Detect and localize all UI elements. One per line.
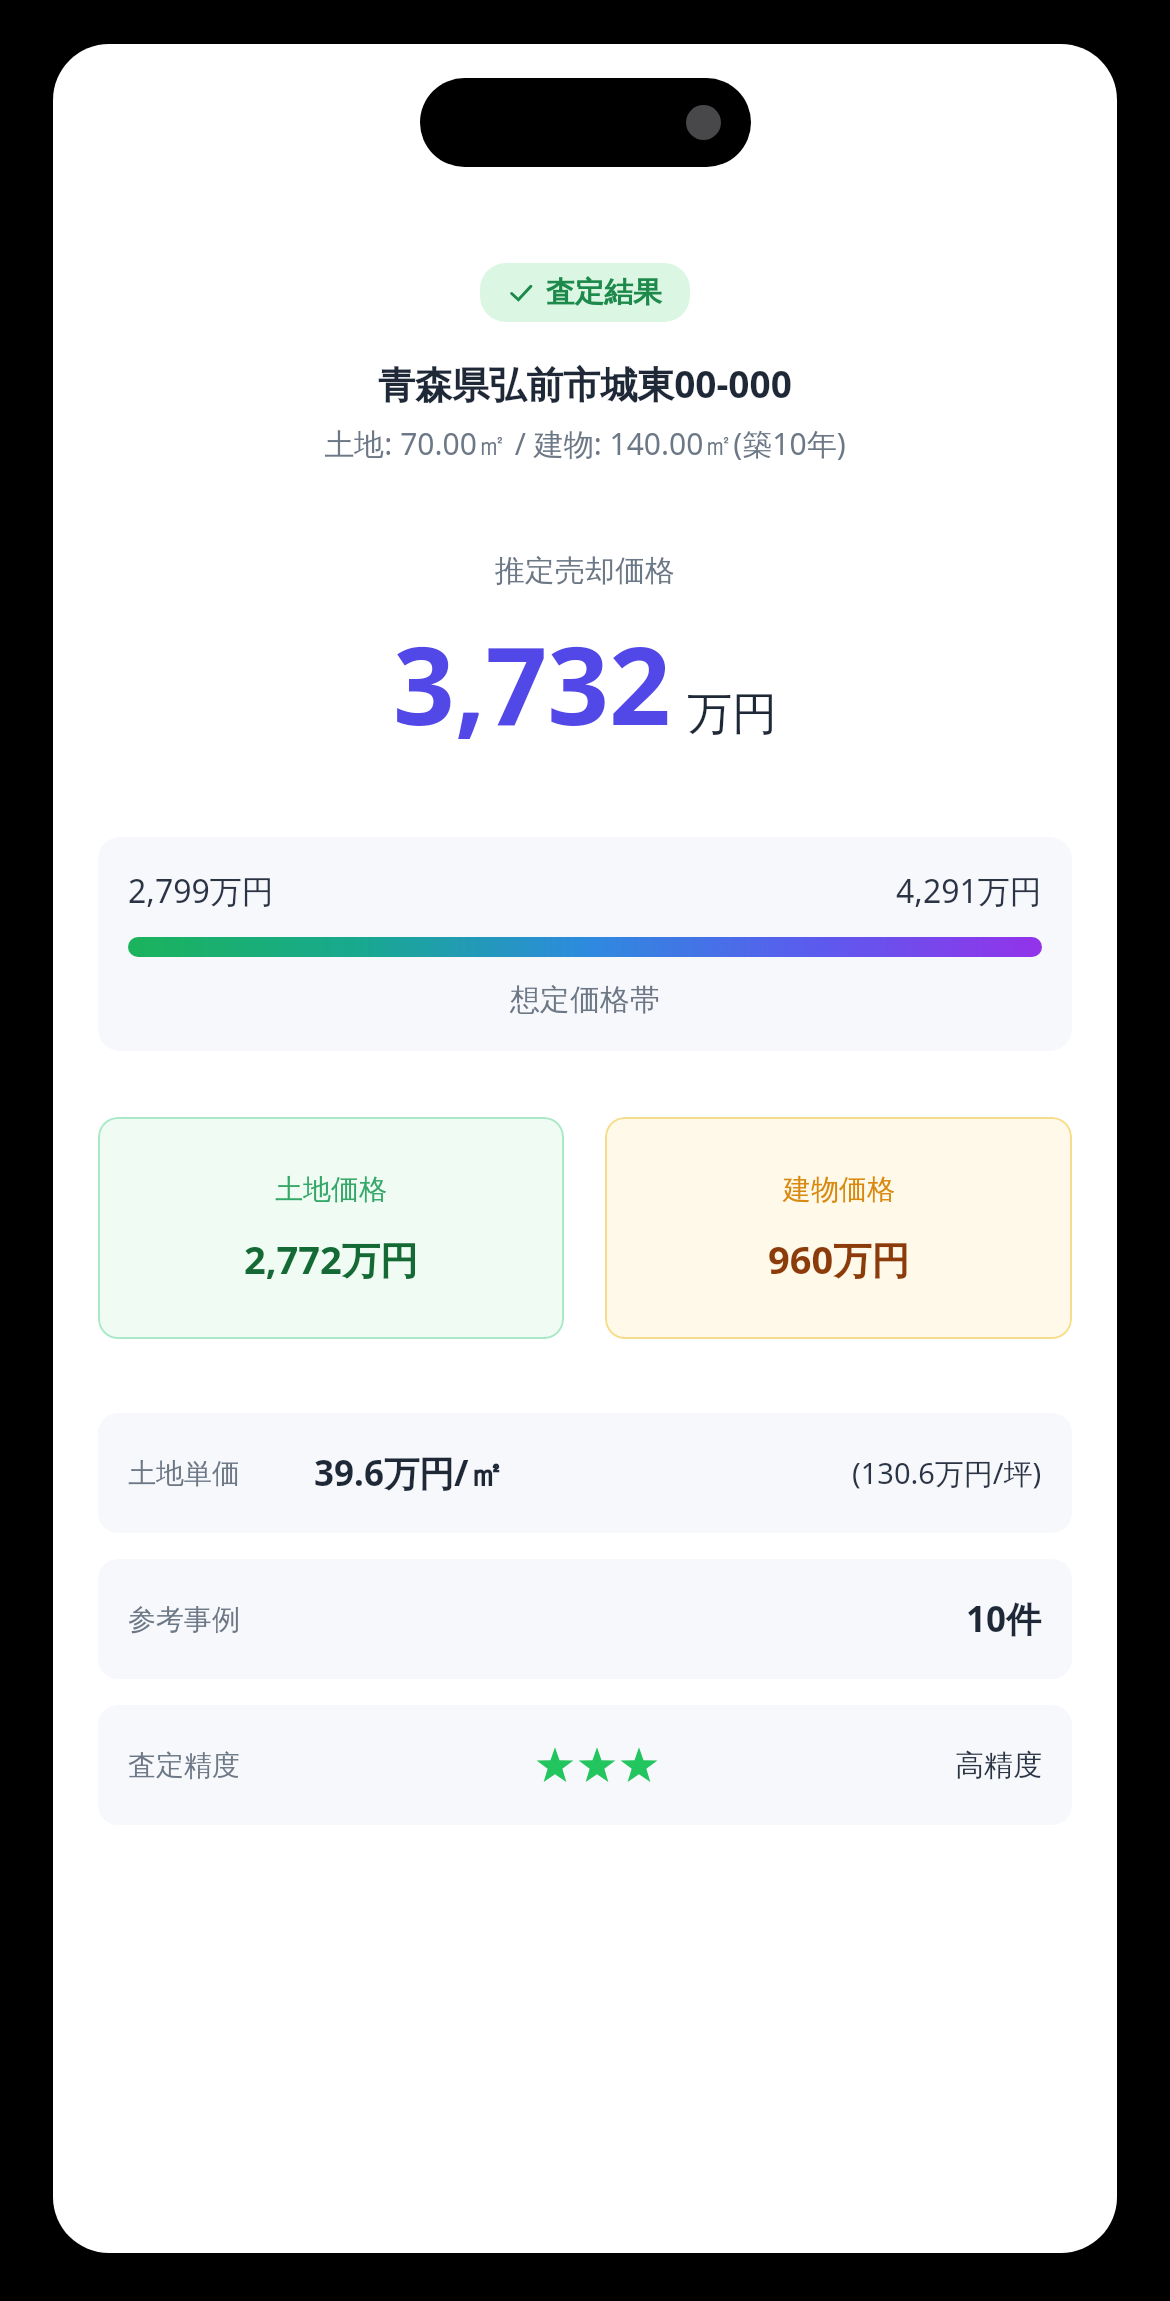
other: Star	[534, 1744, 576, 1786]
staticText: 想定価格帯	[128, 981, 1042, 1019]
staticText: 青森県弘前市城東00-000	[53, 358, 1117, 409]
other: Star	[618, 1744, 660, 1786]
staticText: 査定結果	[546, 274, 662, 311]
staticText: 960万円	[768, 1233, 910, 1285]
staticText: 推定売却価格	[53, 552, 1117, 590]
staticText: 土地単価	[128, 1456, 240, 1491]
staticText: (130.6万円/坪)	[852, 1453, 1042, 1493]
staticText: 4,291万円	[896, 869, 1042, 913]
staticText: 10件	[966, 1595, 1042, 1643]
other: Star	[576, 1744, 618, 1786]
staticText: 39.6万円/㎡	[314, 1449, 504, 1497]
button[interactable]: 参考事例	[98, 1559, 1072, 1679]
staticText: 参考事例	[128, 1602, 240, 1637]
button[interactable]: 土地価格	[98, 1117, 564, 1339]
staticText: 高精度	[955, 1747, 1042, 1784]
staticText: 2,772万円	[244, 1233, 418, 1285]
staticText: 万円	[687, 686, 777, 743]
staticText: 土地価格	[275, 1172, 387, 1207]
button[interactable]: 土地単価	[98, 1413, 1072, 1533]
staticText: 査定精度	[128, 1748, 240, 1783]
button[interactable]: 査定精度	[98, 1705, 1072, 1825]
staticText: 建物価格	[783, 1172, 895, 1207]
button[interactable]: 建物価格	[605, 1117, 1072, 1339]
staticText: 3,732	[393, 610, 671, 757]
button[interactable]: 2,799万円	[98, 837, 1072, 1051]
staticText: 2,799万円	[128, 869, 274, 913]
button[interactable]: 査定結果	[480, 263, 690, 322]
staticText: 土地: 70.00㎡ / 建物: 140.00㎡(築10年)	[53, 423, 1117, 464]
